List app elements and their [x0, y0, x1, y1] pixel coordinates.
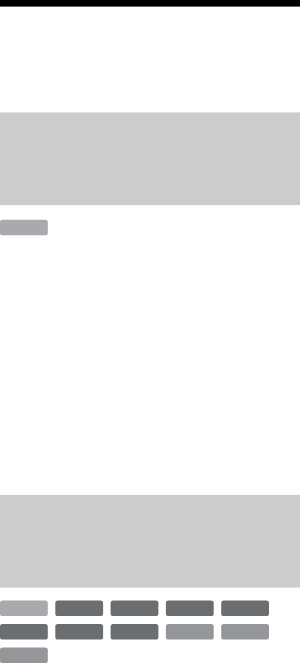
- button[interactable]: Key 5: [221, 601, 269, 617]
- button[interactable]: Key 10: [221, 624, 269, 640]
- button[interactable]: Key 3: [111, 601, 159, 617]
- button[interactable]: Key 9: [166, 624, 214, 640]
- button[interactable]: Key 7: [55, 624, 103, 640]
- button[interactable]: Key 1: [0, 601, 48, 617]
- button[interactable]: Key 2: [55, 601, 103, 617]
- button[interactable]: Key 11: [0, 647, 48, 663]
- button[interactable]: Key 4: [166, 601, 214, 617]
- button[interactable]: Caption tag: [0, 220, 48, 236]
- button[interactable]: Key 6: [0, 624, 48, 640]
- button[interactable]: Key 8: [111, 624, 159, 640]
